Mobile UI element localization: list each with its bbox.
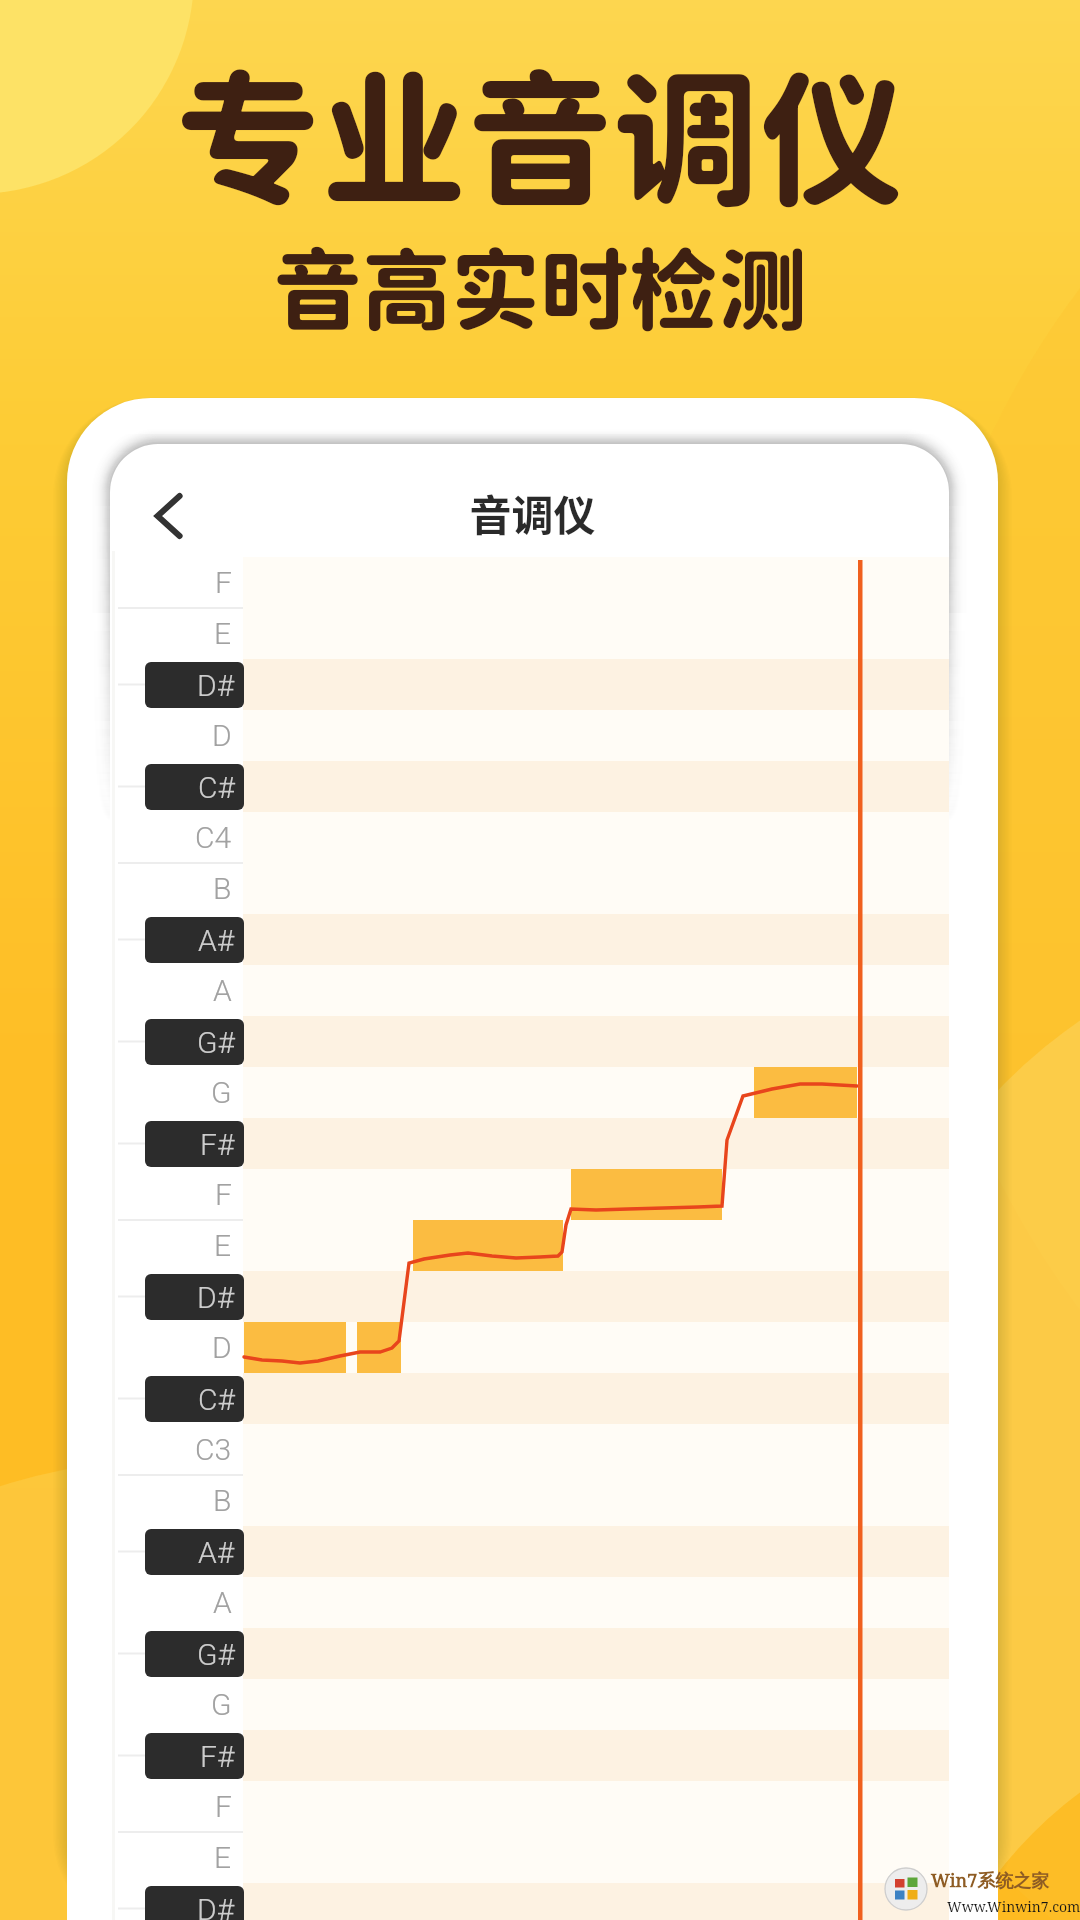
button[interactable]: G bbox=[118, 1067, 232, 1118]
button[interactable]: F bbox=[118, 1169, 232, 1220]
staticText: D# bbox=[197, 668, 235, 703]
staticText: C3 bbox=[195, 1432, 232, 1467]
staticText: 音调仪 bbox=[113, 482, 949, 543]
button[interactable]: A# bbox=[145, 917, 244, 963]
button[interactable]: C4 bbox=[118, 812, 232, 863]
staticText: F# bbox=[200, 1739, 235, 1774]
staticText: C# bbox=[198, 770, 235, 805]
staticText: C4 bbox=[195, 820, 232, 855]
staticText: D# bbox=[197, 1892, 235, 1920]
button[interactable]: F# bbox=[145, 1733, 244, 1779]
button[interactable]: D bbox=[118, 1322, 232, 1373]
staticText: B bbox=[213, 1483, 232, 1518]
staticText: C# bbox=[198, 1382, 235, 1417]
button[interactable]: G bbox=[118, 1679, 232, 1730]
staticText: A# bbox=[198, 1535, 235, 1570]
staticText: B bbox=[213, 871, 232, 906]
staticText: E bbox=[214, 1228, 232, 1263]
button[interactable]: G# bbox=[145, 1019, 244, 1065]
button[interactable]: A bbox=[118, 965, 232, 1016]
staticText: D bbox=[212, 1330, 232, 1365]
staticText: E bbox=[214, 1840, 232, 1875]
staticText: F# bbox=[200, 1127, 235, 1162]
button[interactable]: E bbox=[118, 1832, 232, 1883]
staticText: G# bbox=[197, 1025, 235, 1060]
button[interactable]: A# bbox=[145, 1529, 244, 1575]
staticText: A bbox=[213, 1585, 232, 1620]
button[interactable]: C3 bbox=[118, 1424, 232, 1475]
staticText: F bbox=[215, 1789, 232, 1824]
staticText: G bbox=[211, 1075, 232, 1110]
button[interactable]: D# bbox=[145, 662, 244, 708]
button[interactable]: F# bbox=[145, 1121, 244, 1167]
button[interactable]: D# bbox=[145, 1274, 244, 1320]
staticText: D bbox=[212, 718, 232, 753]
staticText: A bbox=[213, 973, 232, 1008]
button[interactable]: A bbox=[118, 1577, 232, 1628]
staticText: F bbox=[215, 565, 232, 600]
staticText: F bbox=[215, 1177, 232, 1212]
button[interactable]: E bbox=[118, 1220, 232, 1271]
staticText: Www.Winwin7.com bbox=[947, 1897, 1080, 1916]
button[interactable]: Back bbox=[118, 472, 206, 560]
staticText: Win7系统之家 bbox=[931, 1868, 1050, 1893]
staticText: 音高实时检测 bbox=[273, 237, 807, 342]
staticText: 专业音调仪 bbox=[175, 52, 905, 224]
staticText: G bbox=[211, 1687, 232, 1722]
button[interactable]: G# bbox=[145, 1631, 244, 1677]
staticText: E bbox=[214, 616, 232, 651]
button[interactable]: C# bbox=[145, 1376, 244, 1422]
button[interactable]: E bbox=[118, 608, 232, 659]
button[interactable]: C# bbox=[145, 764, 244, 810]
staticText: G# bbox=[197, 1637, 235, 1672]
button[interactable]: B bbox=[118, 1475, 232, 1526]
staticText: A# bbox=[198, 923, 235, 958]
button[interactable]: D# bbox=[145, 1886, 244, 1920]
button[interactable]: D bbox=[118, 710, 232, 761]
button[interactable]: B bbox=[118, 863, 232, 914]
staticText: D# bbox=[197, 1280, 235, 1315]
button[interactable]: F bbox=[118, 1781, 232, 1832]
button[interactable]: F bbox=[118, 557, 232, 608]
